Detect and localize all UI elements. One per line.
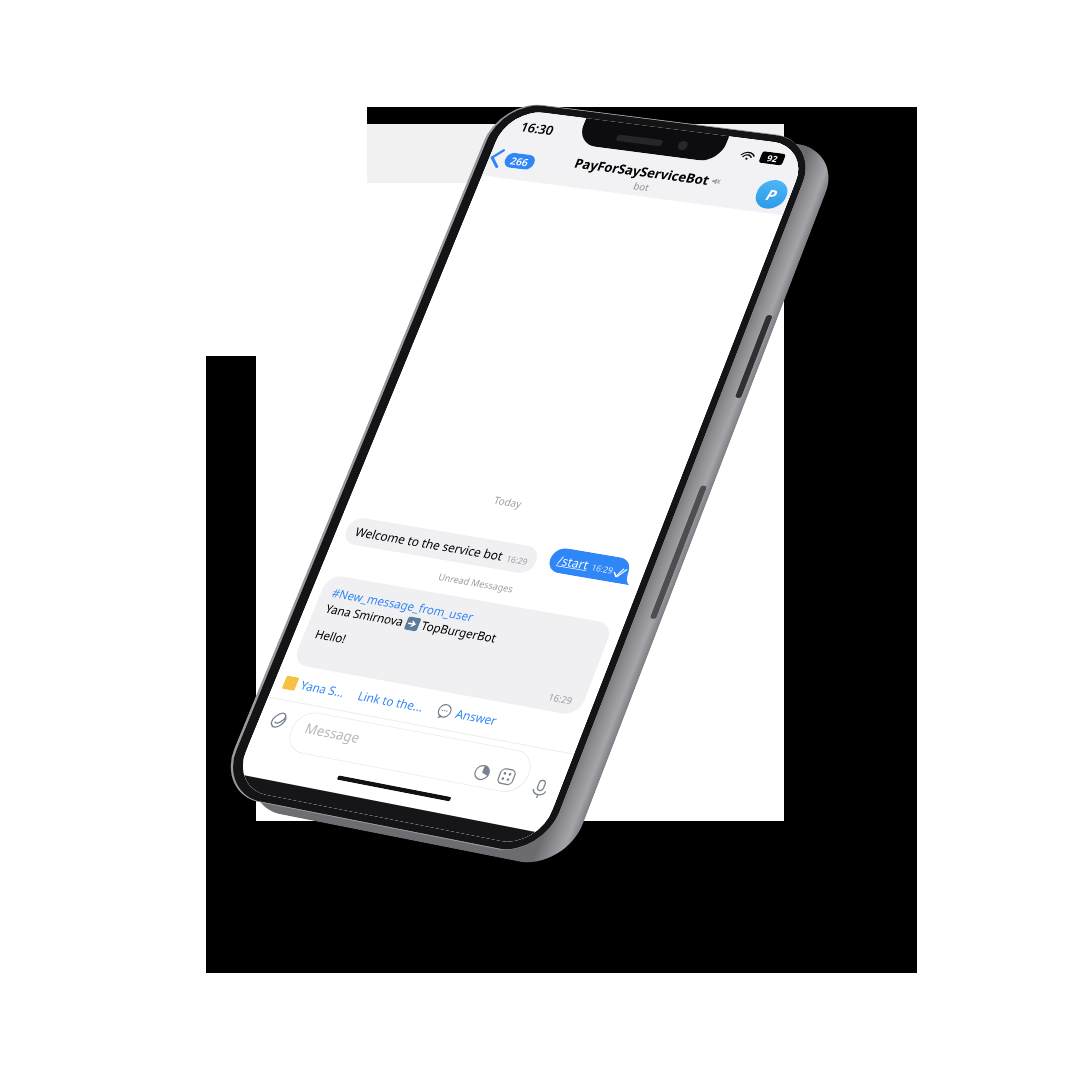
staticText: Welcome to the service bot xyxy=(353,524,506,564)
staticText: /start xyxy=(555,552,592,573)
button[interactable]: Answer xyxy=(434,702,500,729)
staticText: bot xyxy=(632,179,652,194)
button[interactable]: Back, 266 chats xyxy=(486,149,539,171)
staticText: TopBurgerBot xyxy=(419,617,499,646)
staticText: 16:29 xyxy=(590,561,615,576)
staticText: #New_message_from_user xyxy=(329,585,477,625)
staticText: Yana Smirnova xyxy=(323,600,407,630)
staticText: P xyxy=(763,184,780,205)
staticText: Answer xyxy=(453,705,500,729)
staticText: Unread Messages xyxy=(332,552,623,614)
button[interactable]: Welcome to the service bot xyxy=(341,516,541,575)
staticText: Today xyxy=(365,472,655,532)
button[interactable]: Timer xyxy=(471,763,493,782)
button[interactable]: /start xyxy=(545,546,639,585)
button[interactable]: Yana S... xyxy=(281,674,348,701)
button[interactable]: Voice message xyxy=(527,778,553,800)
button[interactable]: Message xyxy=(283,709,537,796)
staticText: Message xyxy=(302,719,363,747)
button[interactable]: Link to the... xyxy=(355,687,426,715)
button[interactable]: Profile xyxy=(751,178,792,211)
staticText: 266 xyxy=(508,153,531,169)
staticText: Hello! xyxy=(313,626,350,647)
staticText: 16:29 xyxy=(546,690,575,707)
button[interactable]: #New_message_from_user xyxy=(292,574,614,716)
button[interactable]: Stickers xyxy=(495,766,518,787)
staticText: 16:29 xyxy=(504,553,530,568)
staticText: PayForSayServiceBot xyxy=(572,154,713,188)
button[interactable]: Attach xyxy=(263,707,293,733)
staticText: 92 xyxy=(765,152,780,165)
staticText: Yana S... xyxy=(298,677,348,701)
staticText: 16:30 xyxy=(518,118,557,138)
